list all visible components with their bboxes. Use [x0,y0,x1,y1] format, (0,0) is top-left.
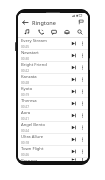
button[interactable]: More options [79,64,86,71]
button[interactable]: Bright Friend [18,62,88,73]
button[interactable]: Play Every Stream [70,40,77,47]
button[interactable]: Play Aora [70,112,77,119]
button[interactable]: More options [79,40,86,47]
staticText: 00:19 [21,93,30,97]
button[interactable]: Every Stream [18,38,88,49]
staticText: Bernava [21,158,38,161]
button[interactable]: Newstart [18,50,88,61]
button[interactable]: Play Angel Bento [70,124,77,131]
button[interactable]: Ultra Allure [18,134,88,145]
button[interactable]: Town Flight [18,146,88,157]
button[interactable]: Ringtones [34,27,47,37]
button[interactable]: Aora [18,110,88,121]
staticText: 00:30 [21,57,30,61]
button[interactable]: Filter [77,18,85,26]
staticText: 00:22 [21,69,30,73]
button[interactable]: Kyoto [18,86,88,97]
button[interactable]: Back [21,18,29,26]
staticText: 00:28 [21,81,30,85]
button[interactable]: Theresa [18,98,88,109]
staticText: Every Stream [21,38,47,44]
button[interactable]: More options [79,124,86,131]
button[interactable]: Angel Bento [18,122,88,133]
staticText: Aora [21,110,31,116]
staticText: Bright Friend [21,62,47,68]
button[interactable]: Alarms [60,27,73,37]
staticText: Kyoto [21,86,33,92]
staticText: 00:18 [21,141,30,145]
button[interactable]: Kanzata [18,74,88,85]
button[interactable]: More options [79,100,86,107]
button[interactable]: Play Theresa [70,100,77,107]
staticText: Town Flight [21,146,44,152]
button[interactable]: Bernava [18,158,88,161]
button[interactable]: Play Newstart [70,52,77,59]
button[interactable]: Messages [47,27,60,37]
staticText: Ringtone [32,19,56,26]
staticText: 00:24 [21,129,30,133]
button[interactable]: More options [79,148,86,155]
staticText: 00:26 [21,153,30,157]
button[interactable]: More options [79,112,86,119]
button[interactable]: More options [79,76,86,83]
button[interactable]: Play Bright Friend [70,64,77,71]
staticText: Ultra Allure [21,134,44,140]
staticText: 00:25 [21,45,30,49]
button[interactable]: Play Kyoto [70,88,77,95]
button[interactable]: More options [79,52,86,59]
staticText: 00:27 [21,105,30,109]
button[interactable]: Play Town Flight [70,148,77,155]
button[interactable]: More options [79,88,86,95]
button[interactable]: Play Kanzata [70,76,77,83]
button[interactable]: Music [20,27,34,37]
button[interactable]: Play Bernava [70,158,77,161]
button[interactable]: Search [73,27,86,37]
staticText: Angel Bento [21,122,46,128]
staticText: 00:21 [21,117,30,121]
staticText: Theresa [21,98,37,104]
staticText: Kanzata [21,74,37,80]
button[interactable]: Play Ultra Allure [70,136,77,143]
button[interactable]: More options [79,158,86,161]
staticText: Newstart [21,50,39,56]
button[interactable]: More options [79,136,86,143]
